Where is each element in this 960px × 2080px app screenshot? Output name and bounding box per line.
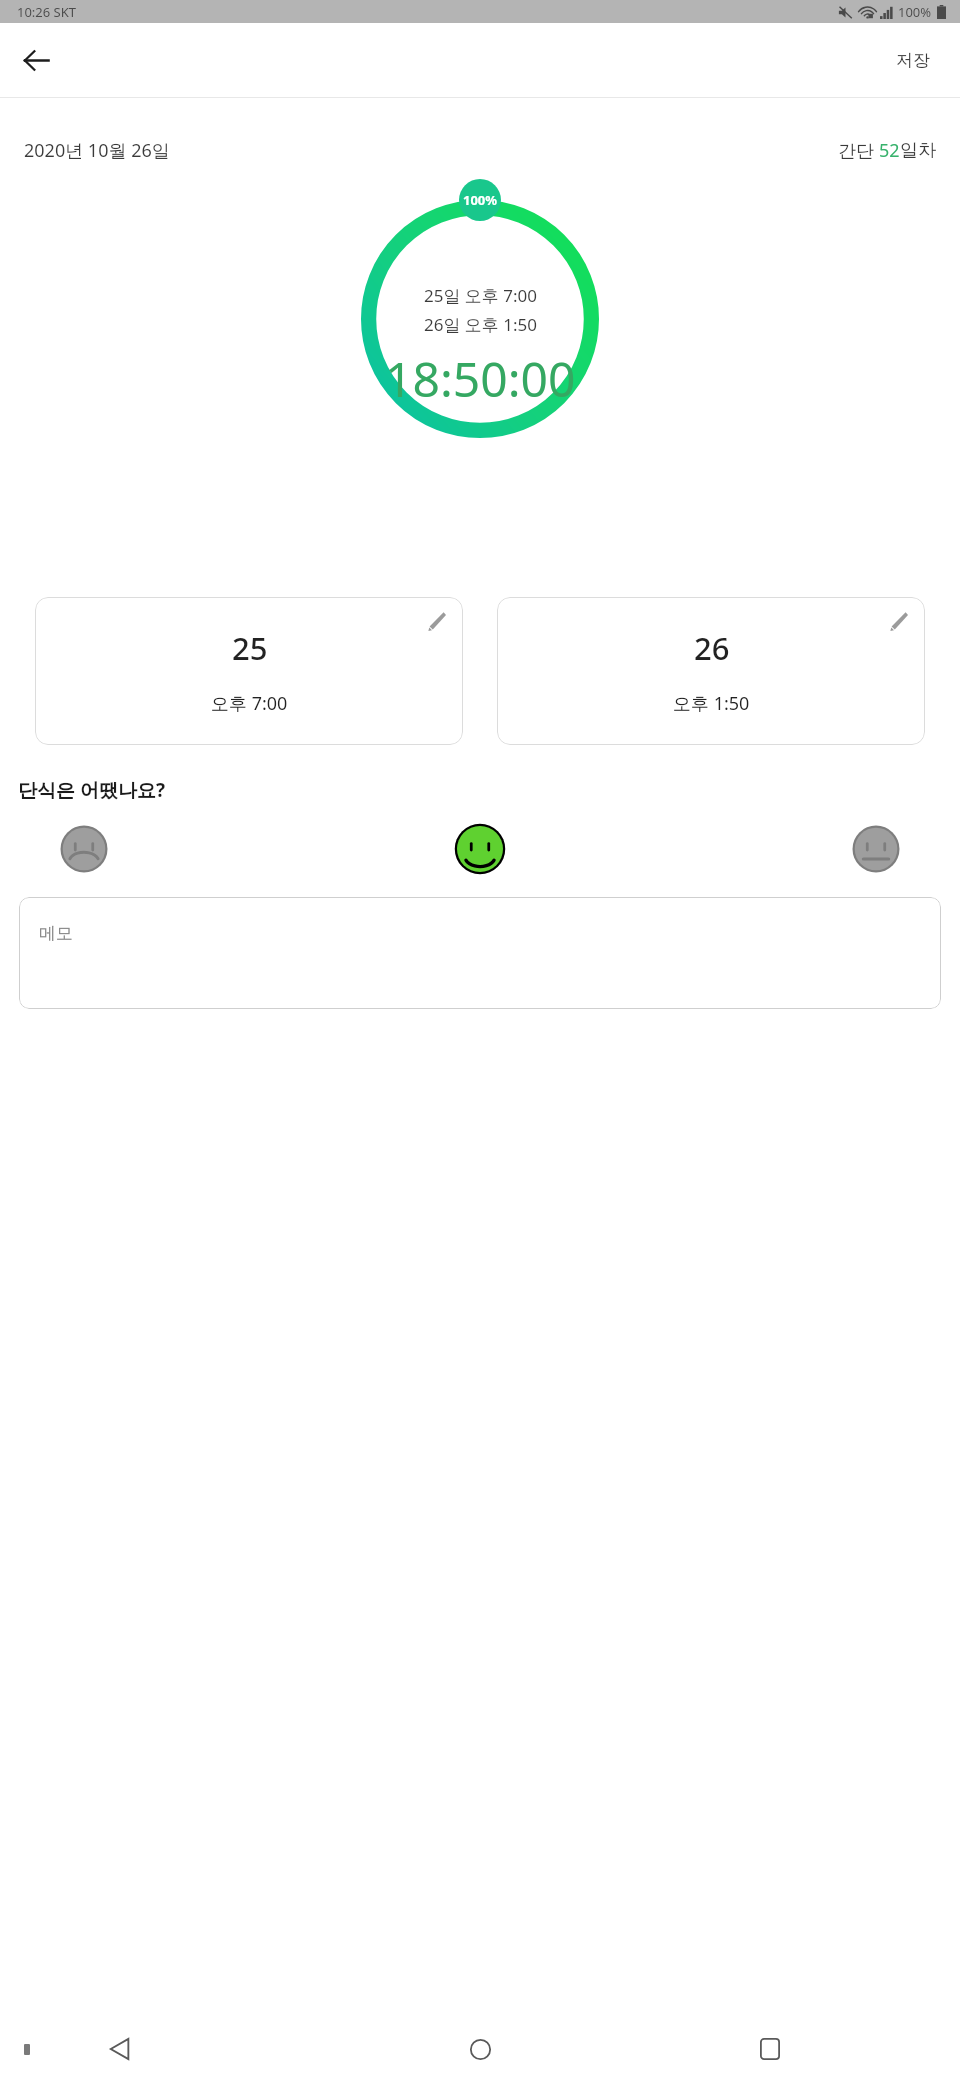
button[interactable]: 메모 [19,897,941,1009]
staticText: 간단 [838,138,879,163]
button[interactable]: Back [94,2023,146,2075]
staticText: 단식은 어땠나요? [18,777,166,803]
button[interactable]: Good [454,823,506,875]
button[interactable]: Bad [58,823,110,875]
staticText: 26 [694,627,730,669]
button[interactable]: 저장 [886,42,940,79]
staticText: 25일 오후 7:00 [424,284,538,307]
staticText: 25 [232,627,268,669]
staticText: 52 [879,138,900,163]
staticText: 10:26 SKT [17,3,77,21]
staticText: 일차 [900,139,936,162]
staticText: 100% [463,191,498,209]
staticText: 저장 [896,50,930,71]
button[interactable]: Neutral [850,823,902,875]
staticText: 100% [898,3,932,21]
staticText: 오후 7:00 [211,691,288,716]
staticText: 오후 1:50 [673,691,750,716]
button[interactable]: Recents [744,2023,796,2075]
staticText: 18:50:00 [385,346,576,411]
button[interactable]: Home [454,2023,506,2075]
staticText: 2020년 10월 26일 [24,138,170,163]
staticText: 26일 오후 1:50 [424,313,538,336]
button[interactable]: Back [8,32,64,88]
staticText: 메모 [39,923,73,944]
button[interactable]: 26 [497,597,925,745]
button[interactable]: 25 [35,597,463,745]
